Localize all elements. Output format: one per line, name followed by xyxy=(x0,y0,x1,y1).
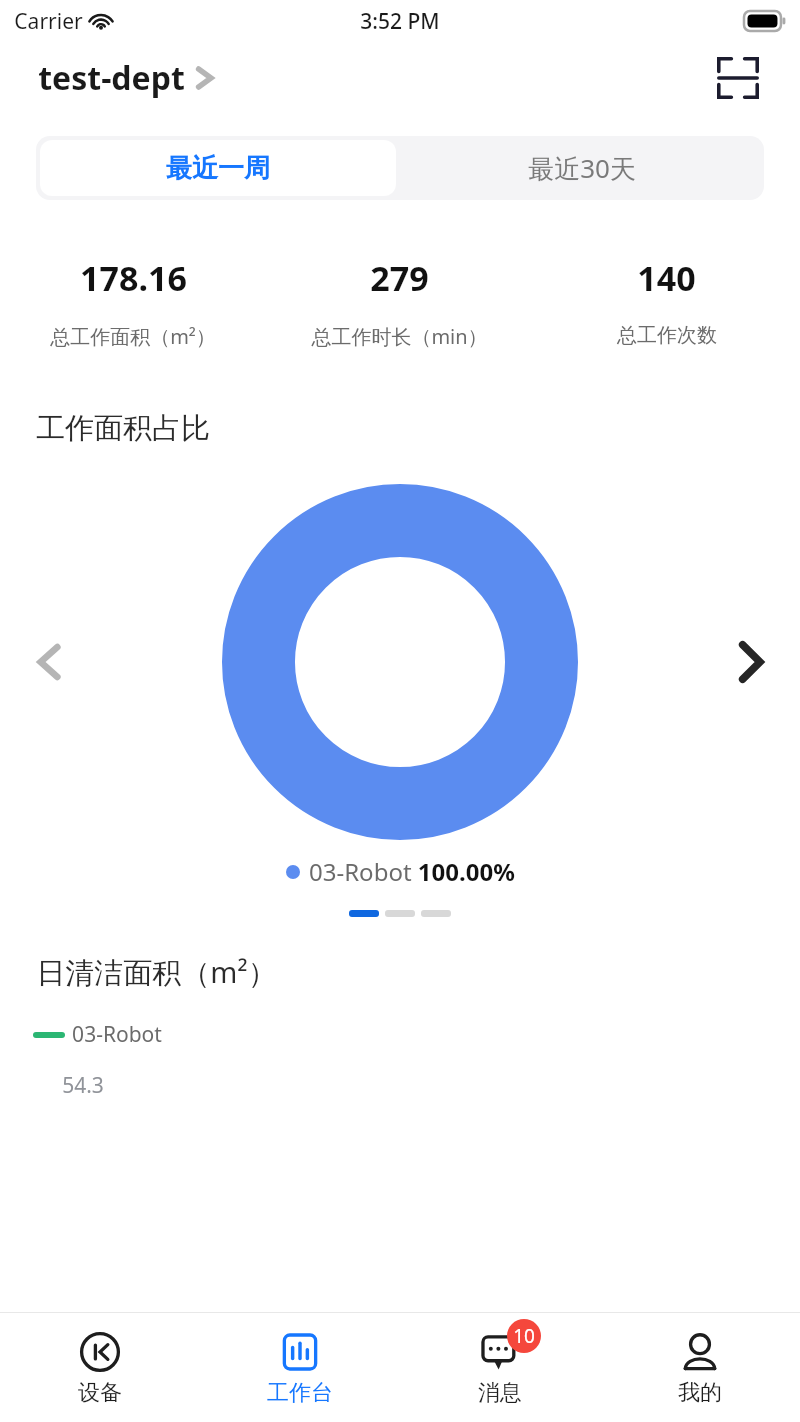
button[interactable]: test-dept xyxy=(38,56,215,100)
staticText: 178.16 xyxy=(80,255,187,301)
button[interactable]: Scan xyxy=(714,54,762,102)
staticText: test-dept xyxy=(38,56,185,100)
staticText: 总工作面积（m²） xyxy=(50,323,216,350)
staticText: 279 xyxy=(370,255,429,301)
staticText: 03-Robot xyxy=(72,1020,162,1049)
staticText: 3:52 PM xyxy=(360,7,440,36)
staticText: 最近30天 xyxy=(528,150,636,186)
staticText: 我的 xyxy=(678,1379,722,1407)
staticText: 总工作时长（min） xyxy=(311,323,488,350)
button[interactable]: 设备 xyxy=(0,1313,200,1422)
staticText: Carrier xyxy=(14,7,83,36)
staticText: 140 xyxy=(637,255,696,301)
button[interactable]: 工作台 xyxy=(200,1313,400,1422)
button[interactable]: 10 xyxy=(400,1313,600,1422)
button[interactable]: 最近30天 xyxy=(400,136,764,200)
staticText: 消息 xyxy=(478,1379,522,1407)
button[interactable]: 我的 xyxy=(600,1313,800,1422)
staticText: 工作面积占比 xyxy=(36,410,210,447)
staticText: 10 xyxy=(513,1323,535,1349)
button[interactable]: Previous chart xyxy=(20,633,78,691)
staticText: 最近一周 xyxy=(166,152,270,185)
staticText: 设备 xyxy=(78,1379,122,1407)
button[interactable]: Next chart xyxy=(722,633,780,691)
staticText: 日清洁面积（m²） xyxy=(36,952,277,992)
staticText: 工作台 xyxy=(267,1379,333,1407)
staticText: 54.3 xyxy=(62,1071,104,1100)
staticText: 总工作次数 xyxy=(617,323,717,348)
staticText: 03-Robot 100.00% xyxy=(309,855,515,888)
button[interactable]: 最近一周 xyxy=(40,140,396,196)
